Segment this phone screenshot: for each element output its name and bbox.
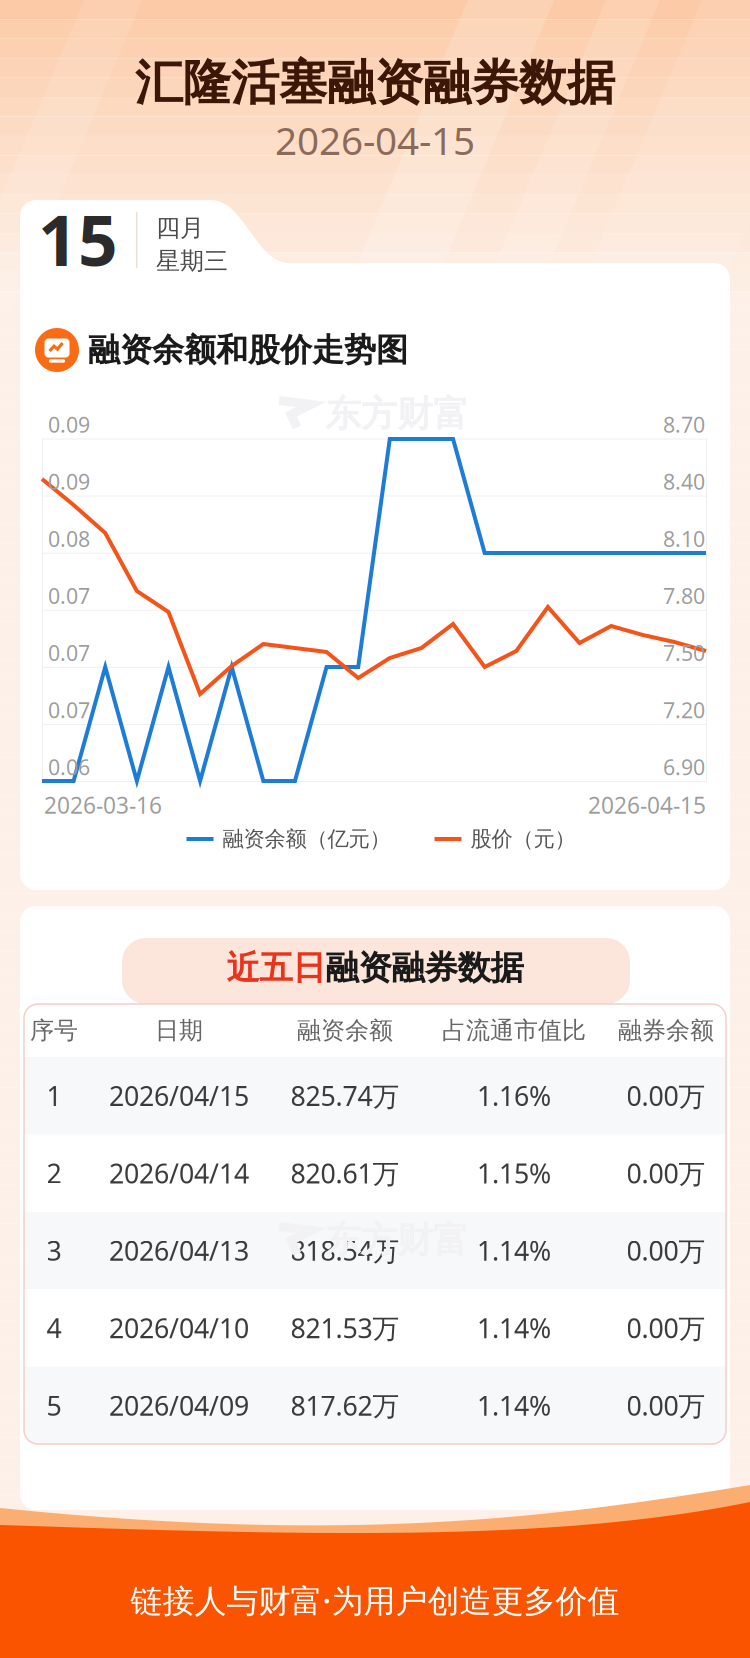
staticText: 7.80 — [663, 582, 705, 610]
staticText: 0.07 — [48, 696, 90, 724]
staticText: 0.06 — [48, 753, 90, 781]
staticText: 818.54万 — [290, 1233, 399, 1268]
staticText: 0.09 — [48, 410, 90, 439]
staticText: 1.14% — [477, 1388, 551, 1423]
staticText: 821.53万 — [290, 1310, 399, 1346]
staticText: 15 — [38, 193, 118, 285]
staticText: 6.90 — [663, 753, 705, 781]
staticText: 7.50 — [663, 639, 705, 667]
staticText: 股价（元） — [470, 826, 575, 852]
button[interactable]: 2 — [24, 1134, 726, 1212]
staticText: 8.70 — [663, 410, 705, 439]
staticText: 0.00万 — [626, 1233, 705, 1268]
staticText: 817.62万 — [290, 1388, 399, 1423]
staticText: 5 — [46, 1388, 61, 1423]
staticText: 融资余额 — [297, 1016, 393, 1045]
staticText: 7.20 — [663, 696, 705, 724]
staticText: 融资余额（亿元） — [222, 826, 390, 852]
staticText: 0.07 — [48, 582, 90, 610]
staticText: 8.40 — [663, 467, 705, 496]
staticText: 四月 — [156, 213, 204, 243]
staticText: 820.61万 — [290, 1155, 399, 1191]
staticText: 2026/04/15 — [109, 1078, 249, 1113]
staticText: 2026/04/09 — [109, 1388, 249, 1423]
staticText: 2026/04/10 — [109, 1310, 249, 1346]
staticText: 3 — [46, 1233, 61, 1268]
staticText: 日期 — [155, 1016, 203, 1045]
button[interactable]: 序号 — [24, 1004, 726, 1057]
staticText: 0.07 — [48, 639, 90, 667]
staticText: 2026-04-15 — [275, 114, 475, 166]
staticText: 0.00万 — [626, 1310, 705, 1346]
staticText: 东方财富 — [325, 392, 469, 436]
staticText: 0.00万 — [626, 1078, 705, 1113]
staticText: 1.16% — [477, 1078, 551, 1113]
staticText: 融资余额和股价走势图 — [88, 330, 408, 370]
staticText: 占流通市值比 — [442, 1016, 586, 1045]
staticText: 2 — [46, 1155, 61, 1191]
button[interactable]: 4 — [24, 1289, 726, 1367]
staticText: 星期三 — [156, 246, 228, 276]
staticText: 1.14% — [477, 1233, 551, 1268]
staticText: 融券余额 — [618, 1016, 714, 1045]
staticText: 825.74万 — [290, 1078, 399, 1113]
staticText: 近五日 — [226, 947, 325, 988]
staticText: 2026-03-16 — [44, 790, 162, 820]
staticText: 0.09 — [48, 467, 90, 496]
staticText: 链接人与财富·为用户创造更多价值 — [130, 1579, 619, 1621]
staticText: 1.15% — [477, 1155, 551, 1191]
staticText: 0.08 — [48, 524, 90, 553]
staticText: 2026/04/14 — [109, 1155, 249, 1191]
staticText: 汇隆活塞融资融券数据 — [135, 53, 615, 112]
staticText: 2026-04-15 — [588, 790, 706, 820]
button[interactable]: 3 — [24, 1212, 726, 1289]
staticText: 2026/04/13 — [109, 1233, 249, 1268]
staticText: 东方财富 — [325, 1218, 469, 1262]
staticText: 0.00万 — [626, 1388, 705, 1423]
staticText: 序号 — [30, 1016, 78, 1045]
staticText: 1 — [46, 1078, 61, 1113]
staticText: 0.00万 — [626, 1155, 705, 1191]
staticText: 8.10 — [663, 524, 705, 553]
staticText: 4 — [46, 1310, 61, 1346]
staticText: 融资融券数据 — [325, 947, 523, 988]
button[interactable]: 1 — [24, 1057, 726, 1134]
staticText: 1.14% — [477, 1310, 551, 1346]
button[interactable]: 5 — [24, 1367, 726, 1444]
